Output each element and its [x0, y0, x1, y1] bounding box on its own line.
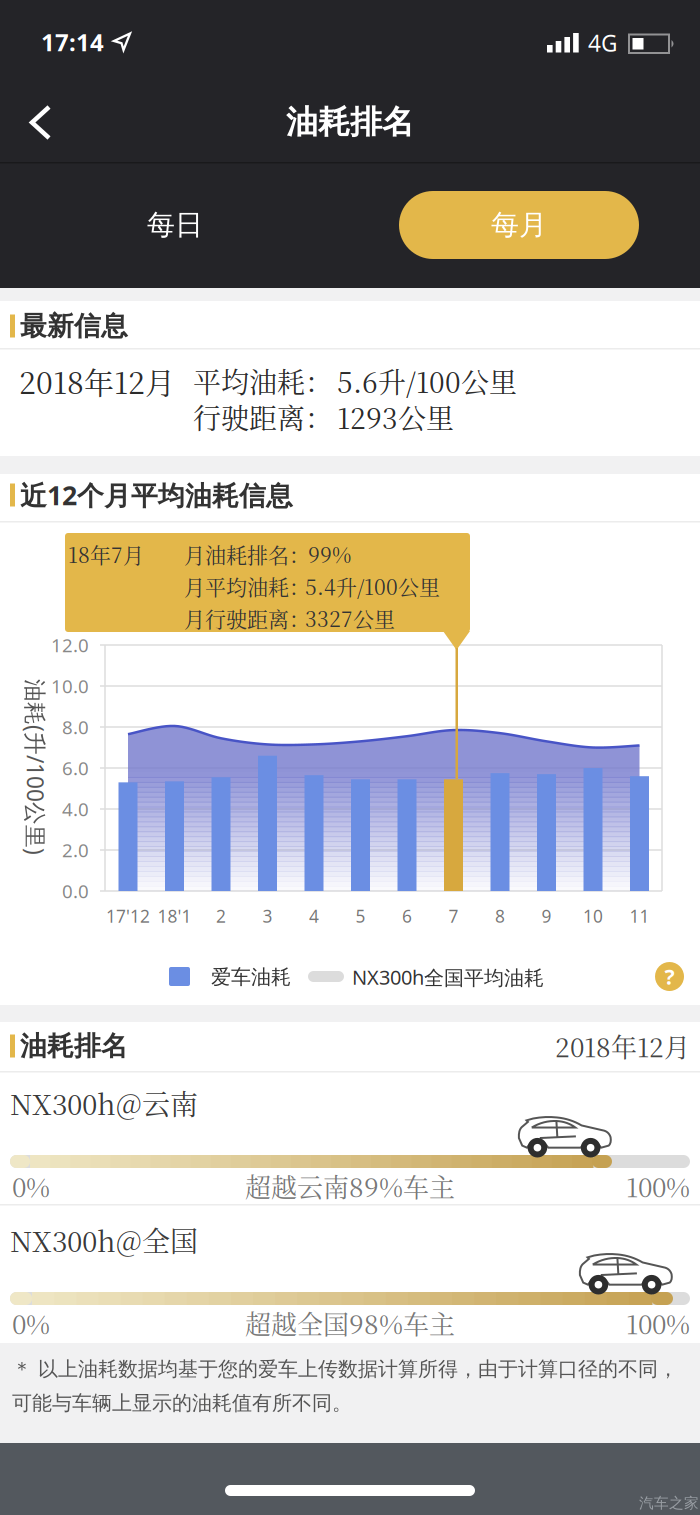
staticText: 10 [583, 904, 603, 927]
staticText: 油耗排名 [20, 1030, 128, 1062]
button[interactable]: 每月 [399, 191, 639, 259]
staticText: 6.0 [62, 756, 89, 780]
staticText: 18'1 [157, 904, 191, 927]
staticText: 超越云南89%车主 [245, 1167, 455, 1205]
staticText: 18年7月 [68, 539, 144, 569]
staticText: 可能与车辆上显示的油耗值有所不同。 [12, 1391, 352, 1415]
staticText: 每月 [491, 208, 547, 242]
staticText: 最新信息 [20, 310, 128, 342]
staticText: 平均油耗： [193, 361, 333, 401]
staticText: 11 [629, 904, 649, 927]
staticText: 月平均油耗： [184, 571, 310, 601]
staticText: 汽车之家 [639, 1494, 699, 1512]
staticText: 17'12 [106, 904, 150, 927]
staticText: 12.0 [51, 633, 89, 657]
staticText: 月油耗排名： [184, 539, 310, 569]
staticText: 超越全国98%车主 [245, 1304, 455, 1342]
staticText: NX300h@全国 [10, 1220, 198, 1260]
staticText: 5.6升/100公里 [337, 361, 517, 401]
staticText: 爱车油耗 [211, 965, 291, 989]
staticText: NX300h全国平均油耗 [352, 964, 544, 990]
staticText: 4.0 [62, 797, 89, 821]
staticText: 月行驶距离： [184, 603, 310, 633]
staticText: ? [664, 962, 674, 991]
staticText: 行驶距离： [193, 397, 333, 437]
staticText: 油耗排名 [286, 102, 414, 142]
staticText: 0% [12, 1304, 50, 1342]
button[interactable]: 每日 [95, 191, 255, 259]
staticText: ＊ 以上油耗数据均基于您的爱车上传数据计算所得，由于计算口径的不同， [12, 1357, 678, 1381]
staticText: 7 [448, 904, 458, 927]
button[interactable]: Help [655, 962, 684, 991]
button[interactable]: Back [20, 102, 68, 143]
staticText: 油耗(升/100公里) [0, 752, 123, 782]
staticText: 1293公里 [337, 397, 454, 437]
staticText: 0.0 [62, 879, 89, 903]
staticText: 17:14 [41, 26, 104, 58]
staticText: 100% [626, 1304, 690, 1342]
staticText: 近12个月平均油耗信息 [20, 477, 293, 513]
staticText: 2018年12月 [555, 1027, 690, 1065]
staticText: 5.4升/100公里 [305, 571, 440, 601]
staticText: 8.0 [62, 715, 89, 739]
staticText: 3 [262, 904, 272, 927]
staticText: 3327公里 [305, 603, 395, 633]
staticText: 6 [402, 904, 412, 927]
staticText: 2 [216, 904, 226, 927]
staticText: 5 [355, 904, 365, 927]
staticText: 4G [588, 28, 618, 58]
staticText: 10.0 [51, 674, 89, 698]
staticText: 2018年12月 [19, 359, 175, 402]
staticText: NX300h@云南 [10, 1083, 198, 1123]
staticText: 100% [626, 1167, 690, 1205]
staticText: 9 [541, 904, 551, 927]
staticText: 2.0 [62, 838, 89, 862]
staticText: 8 [495, 904, 505, 927]
staticText: 99% [308, 539, 351, 569]
staticText: 每日 [147, 208, 203, 242]
staticText: 4 [309, 904, 319, 927]
staticText: 0% [12, 1167, 50, 1205]
